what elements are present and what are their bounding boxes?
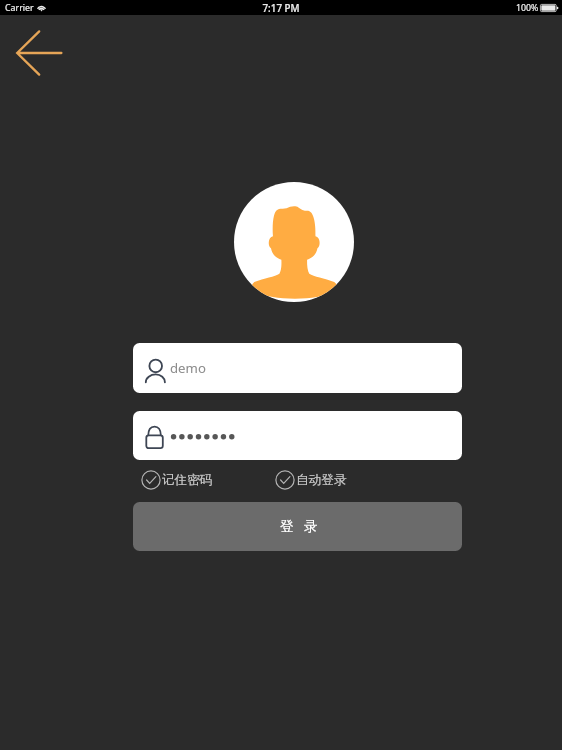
staticText: 记住密码 [162, 472, 213, 488]
button[interactable]: Back [4, 26, 74, 80]
staticText: 7:17 PM [0, 2, 562, 15]
staticText: 自动登录 [296, 472, 347, 488]
button[interactable]: 登 [133, 502, 462, 551]
staticText: 100% [516, 2, 539, 14]
staticText: demo [170, 359, 206, 377]
button[interactable]: 记住密码 [141, 470, 213, 490]
staticText: Carrier [5, 2, 34, 14]
button[interactable] [133, 411, 462, 460]
button[interactable]: 自动登录 [275, 470, 347, 490]
button[interactable]: demo [133, 343, 462, 393]
staticText: 登 [280, 518, 294, 535]
staticText: 录 [304, 518, 318, 535]
